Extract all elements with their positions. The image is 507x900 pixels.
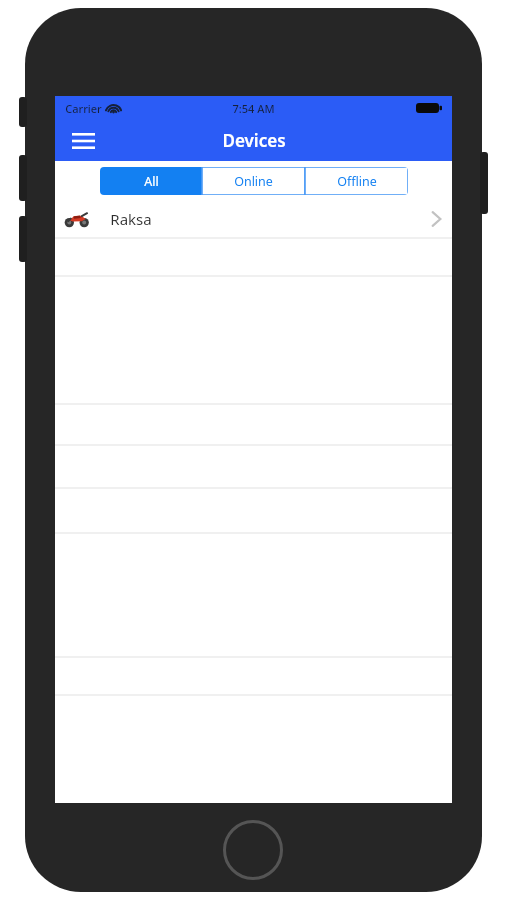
staticText: Raksa [110, 209, 152, 229]
staticText: Carrier [65, 101, 102, 116]
staticText: Online [234, 173, 273, 190]
button[interactable]: All [100, 167, 202, 195]
button[interactable] [55, 658, 452, 696]
button[interactable]: Online [202, 167, 305, 195]
button[interactable] [55, 405, 452, 446]
staticText: Devices [222, 129, 286, 152]
staticText: Offline [337, 173, 377, 190]
staticText: 7:54 AM [232, 101, 275, 116]
button[interactable]: Offline [305, 167, 408, 195]
button[interactable]: Menu [65, 123, 101, 159]
button[interactable] [55, 489, 452, 534]
staticText: All [144, 173, 159, 190]
button[interactable] [55, 239, 452, 277]
button[interactable] [55, 446, 452, 489]
button[interactable]: Raksa [55, 198, 452, 239]
